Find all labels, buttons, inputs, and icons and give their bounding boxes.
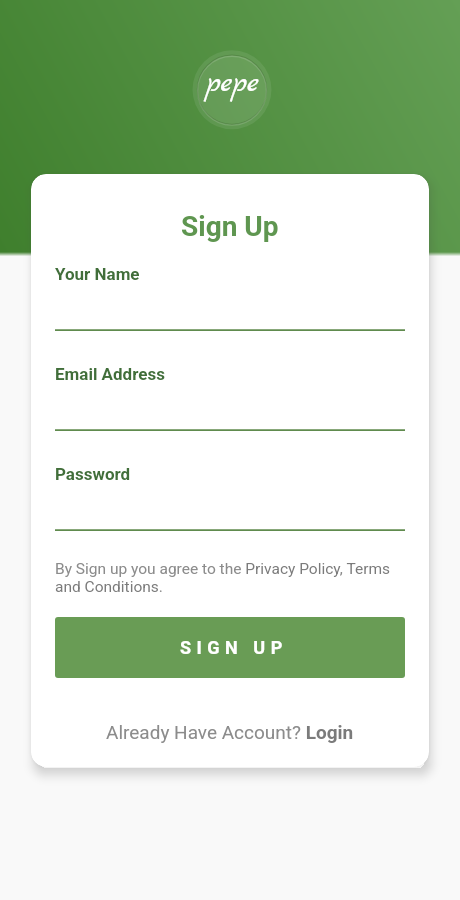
staticText: Sign Up xyxy=(181,210,279,243)
button[interactable]: Your Name xyxy=(55,264,405,331)
staticText: By Sign up you agree to the Privacy Poli… xyxy=(55,560,405,596)
button[interactable]: Email Address xyxy=(55,364,405,431)
staticText: Email Address xyxy=(55,364,165,384)
staticText: Already Have Account? Login xyxy=(106,721,354,743)
button[interactable]: Already Have Account? Login xyxy=(98,717,362,747)
staticText: pepe xyxy=(206,65,259,102)
other: pepe logo xyxy=(192,50,272,130)
staticText: Your Name xyxy=(55,264,140,284)
button[interactable]: SIGN UP xyxy=(55,617,405,678)
staticText: Password xyxy=(55,464,131,484)
staticText: SIGN UP xyxy=(180,637,288,658)
button[interactable]: Password xyxy=(55,464,405,531)
